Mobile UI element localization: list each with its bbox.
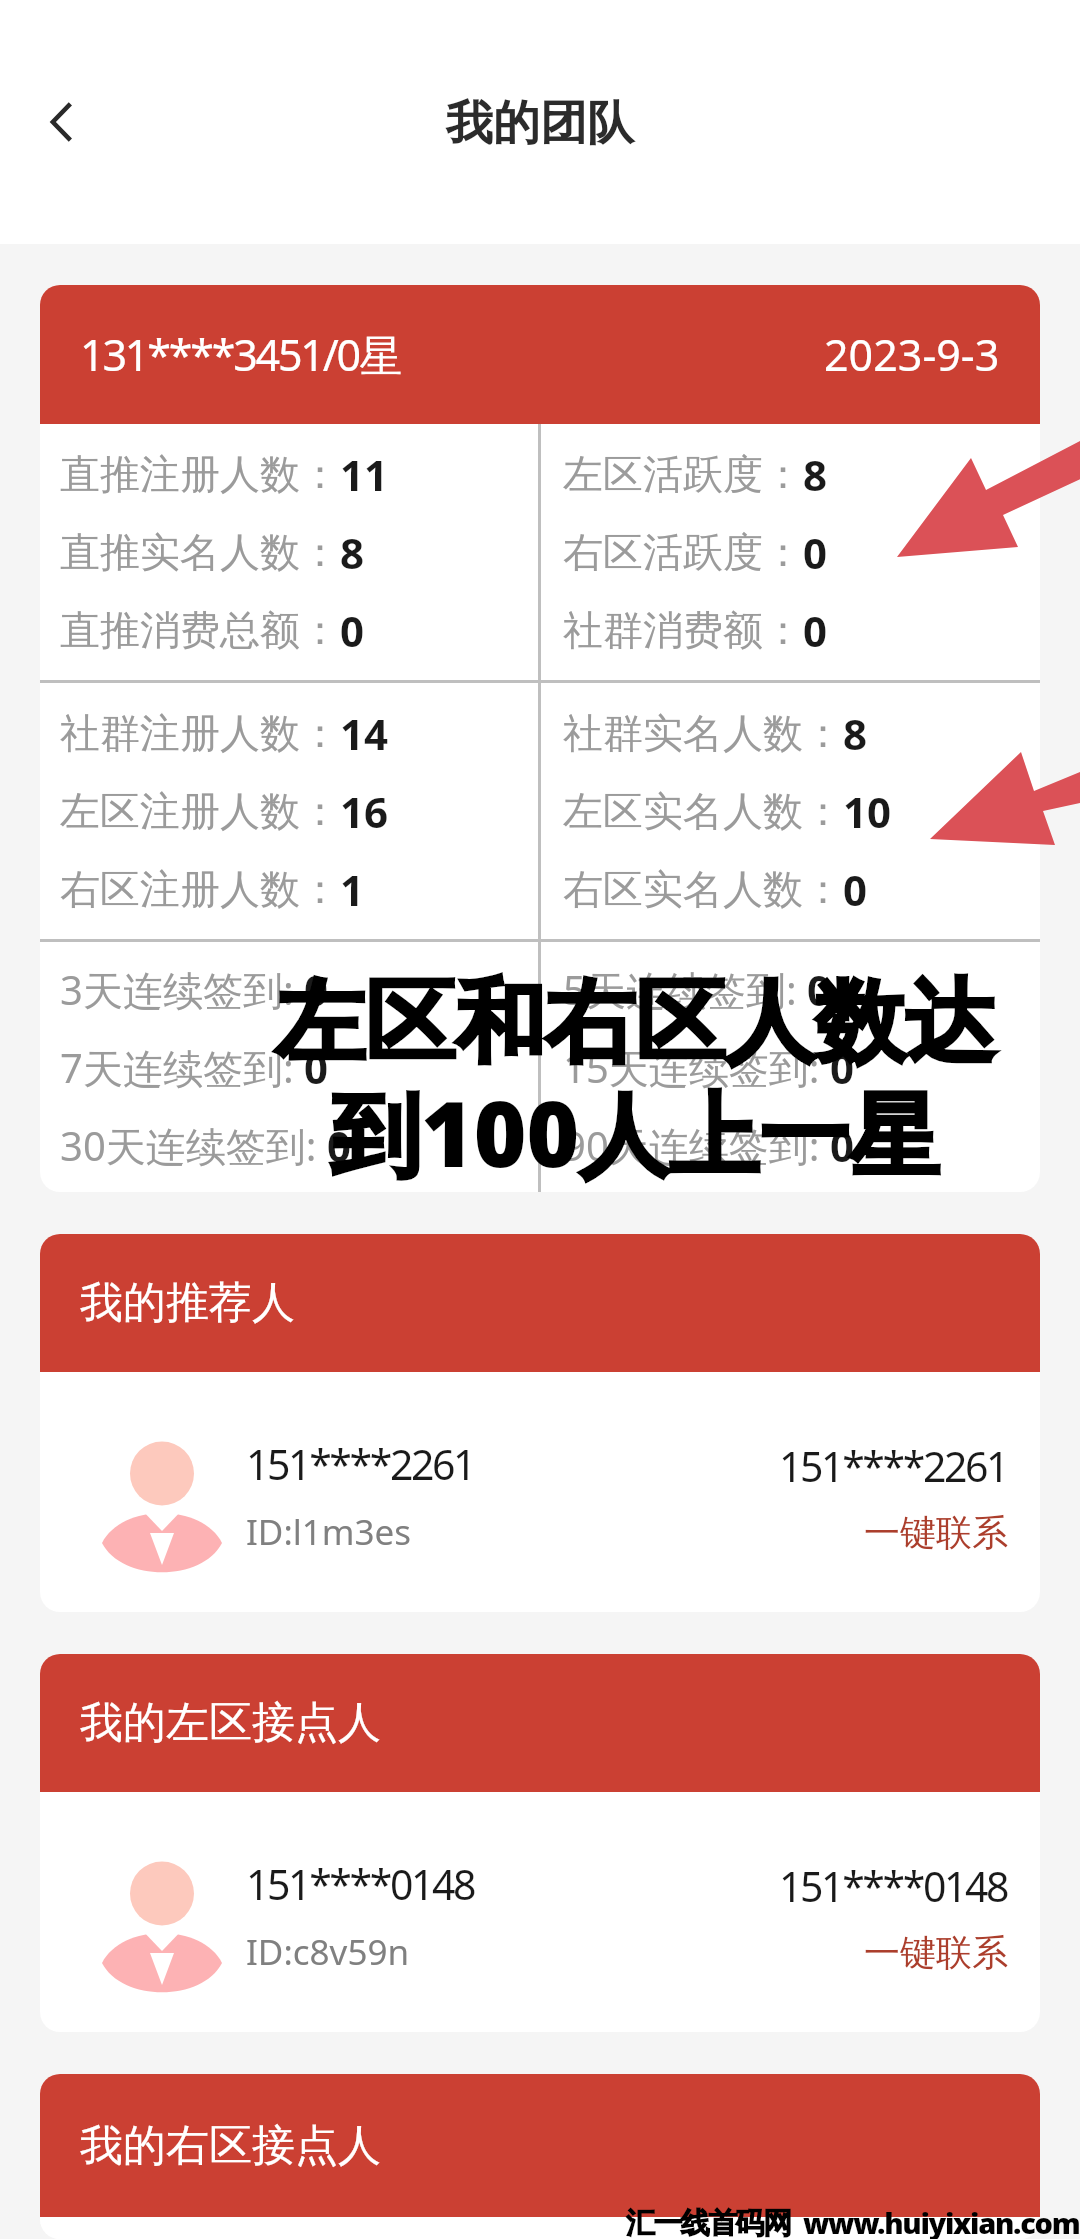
button[interactable]: 一键联系 [864,1510,1008,1555]
staticText: 15天连续签到: [563,1040,830,1095]
staticText: 我的左区接点人 [80,1696,381,1750]
staticText: 到100人上一星 [331,1071,940,1194]
staticText: 30天连续签到: [60,1118,327,1173]
staticText: 我的团队 [446,94,634,153]
staticText: 131****3451/0星 [80,325,400,384]
staticText: 5天连续签到: [563,962,807,1017]
staticText: 0 [803,524,828,581]
staticText: 0 [304,1039,329,1096]
staticText: 汇一线首码网 [626,2205,791,2239]
staticText: 左区实名人数： [563,786,843,836]
staticText: 左区和右区人数达 [275,966,995,1079]
staticText: 直推注册人数： [60,449,340,499]
staticText: 14 [340,705,389,762]
staticText: 0 [327,1117,352,1174]
staticText: 151****0148 [246,1856,475,1912]
staticText: 90天连续签到: [563,1118,830,1173]
staticText: 右区注册人数： [60,864,340,914]
button[interactable] [40,2217,1040,2239]
staticText: 8 [843,705,868,762]
staticText: 右区实名人数： [563,864,843,914]
staticText: 直推消费总额： [60,605,340,655]
staticText: 左区活跃度： [563,449,803,499]
staticText: ID:c8v59n [246,1928,410,1976]
staticText: 社群注册人数： [60,708,340,758]
staticText: 10 [843,783,892,840]
button[interactable]: 151****2261 [40,1372,1040,1612]
staticText: 一键联系 [864,1930,1008,1975]
staticText: 0 [807,961,832,1018]
staticText: 7天连续签到: [60,1040,304,1095]
staticText: 0 [304,961,329,1018]
staticText: 一键联系 [864,1510,1008,1555]
staticText: 0 [340,602,365,659]
staticText: 左区注册人数： [60,786,340,836]
staticText: 直推实名人数： [60,527,340,577]
staticText: 151****2261 [779,1438,1008,1494]
staticText: www.huiyixian.com [803,2203,1080,2239]
staticText: 社群实名人数： [563,708,843,758]
staticText: 0 [830,1117,855,1174]
staticText: 我的推荐人 [80,1276,295,1330]
staticText: 151****2261 [246,1436,475,1492]
staticText: 0 [843,861,868,918]
staticText: 16 [340,783,389,840]
staticText: 1 [340,861,365,918]
staticText: 0 [830,1039,855,1096]
button[interactable]: 一键联系 [864,1930,1008,1975]
staticText: 151****0148 [779,1858,1008,1914]
staticText: 3天连续签到: [60,962,304,1017]
staticText: 2023-9-3 [824,325,1000,384]
staticText: 11 [340,446,389,503]
staticText: 8 [803,446,828,503]
staticText: 0 [803,602,828,659]
staticText: ID:l1m3es [246,1508,412,1556]
button[interactable]: Back [0,62,120,182]
staticText: 社群消费额： [563,605,803,655]
button[interactable]: 151****0148 [40,1792,1040,2032]
staticText: 右区活跃度： [563,527,803,577]
staticText: 8 [340,524,365,581]
staticText: 我的右区接点人 [80,2119,381,2173]
